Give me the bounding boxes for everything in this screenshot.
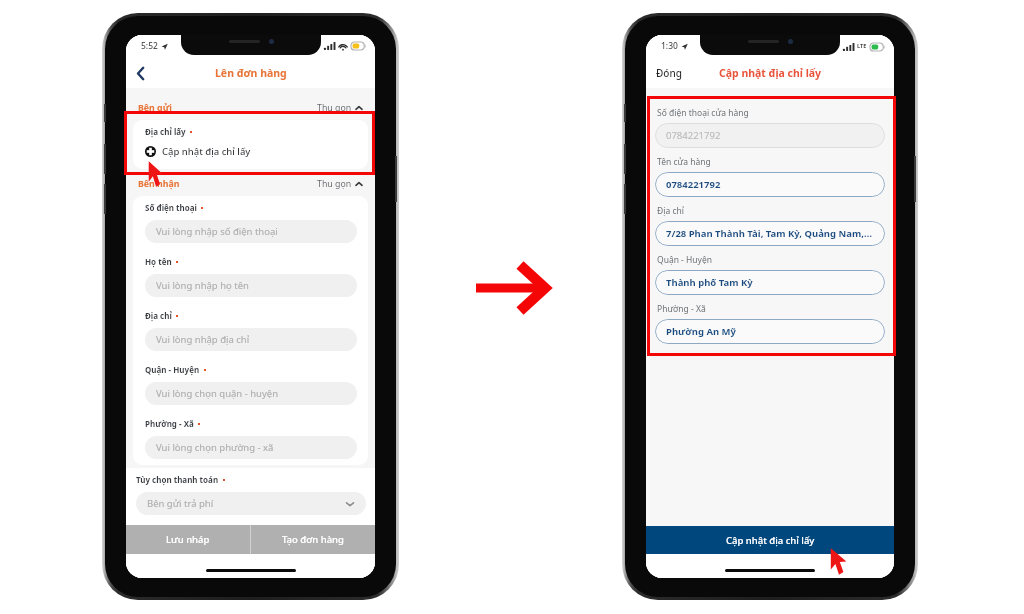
button[interactable]: Back — [130, 63, 150, 83]
staticText: Bên gửi — [138, 102, 172, 114]
staticText: Phường - Xã — [145, 418, 194, 429]
staticText: Phường - Xã — [657, 303, 706, 315]
staticText: 0784221792 — [666, 129, 721, 142]
button[interactable]: Vui lòng nhập họ tên — [145, 274, 357, 297]
staticText: 0784221792 — [666, 178, 721, 191]
staticText: Vui lòng chọn phường - xã — [156, 441, 274, 454]
staticText: Cập nhật địa chỉ lấy — [162, 145, 251, 158]
staticText: Số điện thoại cửa hàng — [657, 107, 749, 119]
button[interactable]: Lưu nháp — [126, 525, 250, 554]
staticText: Địa chỉ — [145, 310, 172, 321]
staticText: Tên cửa hàng — [657, 156, 711, 168]
button[interactable]: 7/28 Phan Thành Tài, Tam Kỳ, Quảng Nam,… — [655, 221, 885, 246]
staticText: Bên nhận — [138, 178, 180, 190]
staticText: 5:52 — [141, 40, 158, 52]
staticText: Cập nhật địa chỉ lấy — [726, 534, 815, 547]
staticText: Tạo đơn hàng — [282, 533, 344, 546]
button[interactable]: Tạo đơn hàng — [251, 525, 375, 554]
button[interactable]: Thu gọn — [317, 178, 363, 190]
button[interactable]: Thu gọn — [317, 102, 363, 114]
button[interactable]: Vui lòng nhập số điện thoại — [145, 220, 357, 243]
staticText: Cập nhật địa chỉ lấy — [719, 66, 822, 80]
staticText: Thành phố Tam Kỳ — [666, 276, 753, 289]
button[interactable]: Đóng — [656, 66, 682, 80]
button[interactable]: 0784221792 — [655, 172, 885, 197]
staticText: Lên đơn hàng — [215, 66, 287, 80]
button[interactable]: Vui lòng nhập địa chỉ — [145, 328, 357, 351]
staticText: Vui lòng nhập số điện thoại — [156, 225, 278, 238]
button[interactable]: Cập nhật địa chỉ lấy — [646, 526, 894, 554]
staticText: Quận - Huyện — [657, 254, 713, 266]
staticText: Số điện thoại — [145, 202, 197, 213]
staticText: Vui lòng nhập địa chỉ — [156, 333, 250, 346]
staticText: Vui lòng nhập họ tên — [156, 279, 249, 292]
staticText: 1:30 — [661, 40, 678, 52]
button[interactable]: Phường An Mỹ — [655, 319, 885, 344]
staticText: Địa chỉ lấy — [145, 126, 186, 137]
button[interactable]: Thành phố Tam Kỳ — [655, 270, 885, 295]
staticText: Đóng — [656, 66, 682, 80]
staticText: LTE — [857, 42, 867, 50]
staticText: Thu gọn — [317, 102, 352, 114]
button[interactable]: Vui lòng chọn quận - huyện — [145, 382, 357, 405]
staticText: Phường An Mỹ — [666, 325, 736, 338]
staticText: Quận - Huyện — [145, 364, 200, 375]
button[interactable]: Vui lòng chọn phường - xã — [145, 436, 357, 459]
staticText: Tùy chọn thanh toán — [136, 474, 219, 485]
button[interactable]: Bên gửi trả phí — [136, 492, 366, 515]
staticText: Địa chỉ — [657, 205, 684, 217]
staticText: Thu gọn — [317, 178, 352, 190]
button[interactable]: Địa chỉ lấy — [133, 120, 368, 169]
button[interactable]: 0784221792 — [655, 123, 885, 148]
staticText: Họ tên — [145, 256, 172, 267]
other: Mở danh sách — [345, 499, 355, 509]
staticText: Bên gửi trả phí — [147, 497, 214, 510]
staticText: 7/28 Phan Thành Tài, Tam Kỳ, Quảng Nam,… — [666, 227, 873, 240]
staticText: Lưu nháp — [166, 533, 210, 546]
staticText: Vui lòng chọn quận - huyện — [156, 387, 279, 400]
